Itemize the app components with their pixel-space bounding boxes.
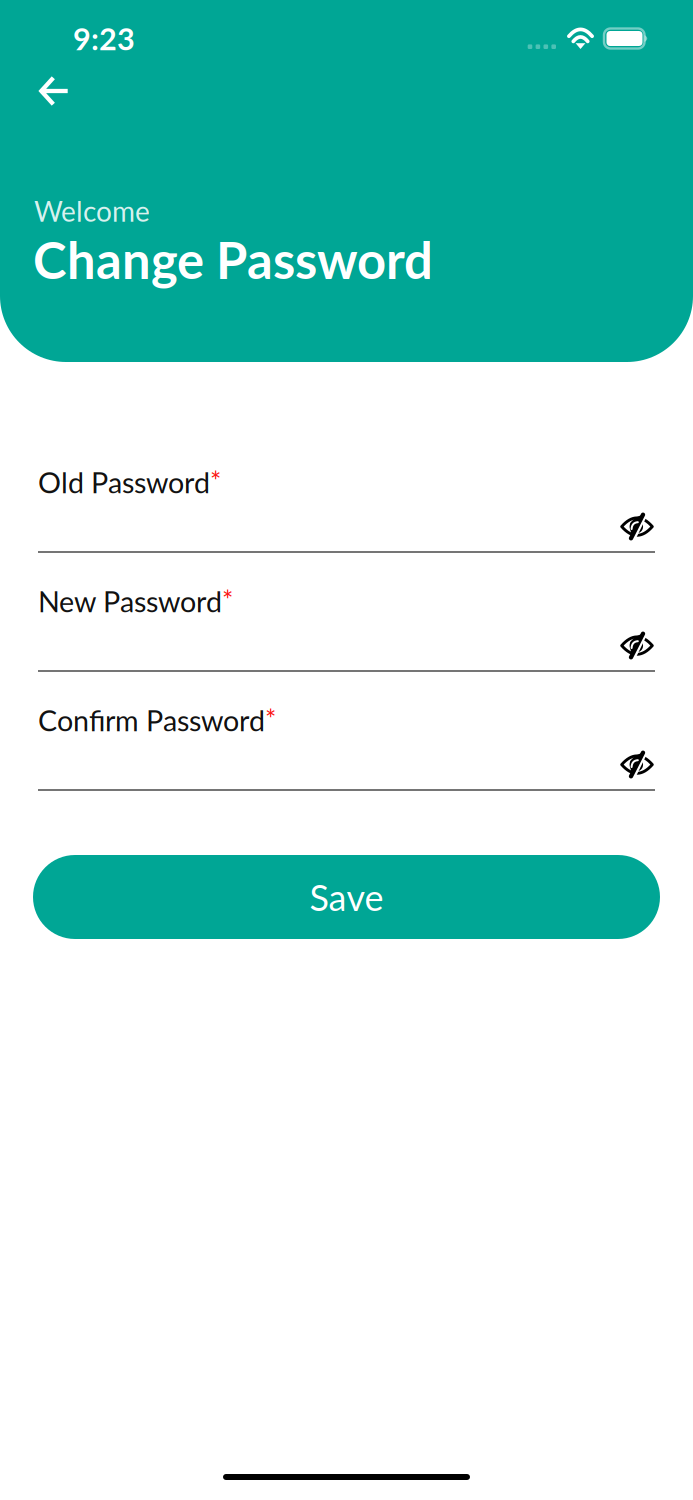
staticText: Confirm Password [38, 703, 265, 737]
button[interactable]: Show New Password [611, 620, 655, 662]
staticText: Old Password [38, 465, 210, 499]
staticText: Change Password [33, 229, 433, 290]
staticText: Save [309, 875, 383, 919]
staticText: Welcome [34, 194, 150, 228]
button[interactable]: Show Confirm Password [611, 739, 655, 781]
staticText: * [210, 465, 221, 497]
staticText: * [265, 703, 276, 735]
staticText: 9:23 [73, 20, 135, 57]
button[interactable]: Save [33, 855, 660, 939]
button[interactable]: Back [31, 70, 77, 112]
button[interactable]: Show Old Password [611, 501, 655, 543]
staticText: * [222, 584, 233, 616]
staticText: New Password [38, 584, 222, 618]
